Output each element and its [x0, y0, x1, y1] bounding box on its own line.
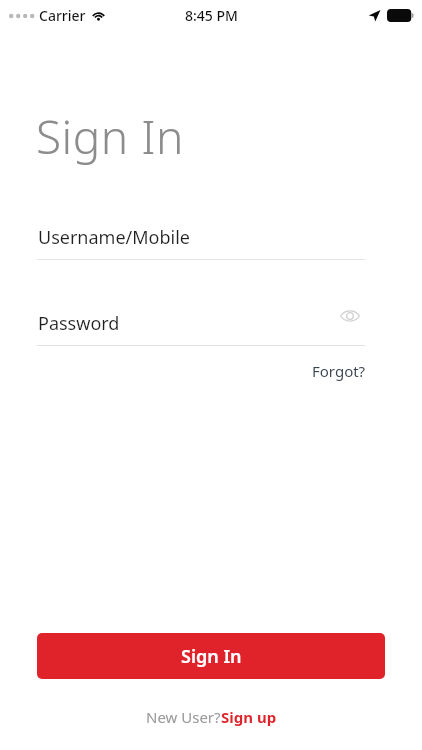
staticText: Sign In	[181, 644, 242, 669]
button[interactable]: Sign up	[221, 707, 277, 727]
button[interactable]: Username/Mobile	[37, 213, 365, 261]
staticText: Carrier	[39, 6, 86, 25]
button[interactable]: Forgot?	[292, 356, 366, 386]
staticText: Password	[38, 311, 120, 336]
staticText: Username/Mobile	[38, 225, 190, 250]
staticText: Forgot?	[312, 361, 366, 381]
button[interactable]: Show password	[332, 298, 368, 334]
button[interactable]: Password	[37, 299, 327, 347]
staticText: New User?	[146, 707, 221, 727]
staticText: Sign up	[221, 707, 277, 727]
staticText: 8:45 PM	[185, 6, 238, 25]
staticText: Sign In	[36, 105, 184, 168]
button[interactable]: Sign In	[37, 633, 385, 679]
